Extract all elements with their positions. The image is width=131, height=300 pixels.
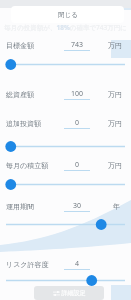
staticText: 0 xyxy=(64,118,90,128)
staticText: 詳細設定 xyxy=(60,289,86,297)
button[interactable]: Slider xyxy=(0,218,131,231)
staticText: 総資産額 xyxy=(6,90,34,99)
staticText: 万円 xyxy=(108,161,122,170)
staticText: 運用期間 xyxy=(6,202,34,211)
button[interactable]: Slider xyxy=(0,58,131,71)
staticText: 万円 xyxy=(108,90,122,99)
button[interactable]: Slider xyxy=(0,178,131,191)
staticText: 0 xyxy=(64,160,90,170)
staticText: 年 xyxy=(113,202,120,211)
staticText: 閉じる xyxy=(58,11,78,19)
staticText: 万円 xyxy=(108,41,122,50)
staticText: 毎月の積立額 xyxy=(6,161,49,170)
staticText: 目標金額 xyxy=(6,41,34,50)
staticText: 30 xyxy=(64,201,90,211)
button[interactable]: 詳細設定 xyxy=(34,286,104,300)
staticText: 万円 xyxy=(108,119,122,128)
staticText: 毎月の投資額が、18%の確率で743万円に xyxy=(0,23,131,32)
button[interactable]: Slider xyxy=(0,274,131,287)
staticText: リスク許容度 xyxy=(6,260,49,269)
staticText: 100 xyxy=(64,89,90,99)
staticText: 743 xyxy=(64,40,90,50)
button[interactable]: Slider xyxy=(0,140,131,153)
button[interactable]: 閉じる xyxy=(11,6,124,23)
staticText: 追加投資額 xyxy=(6,119,41,128)
staticText: 4 xyxy=(64,259,90,269)
